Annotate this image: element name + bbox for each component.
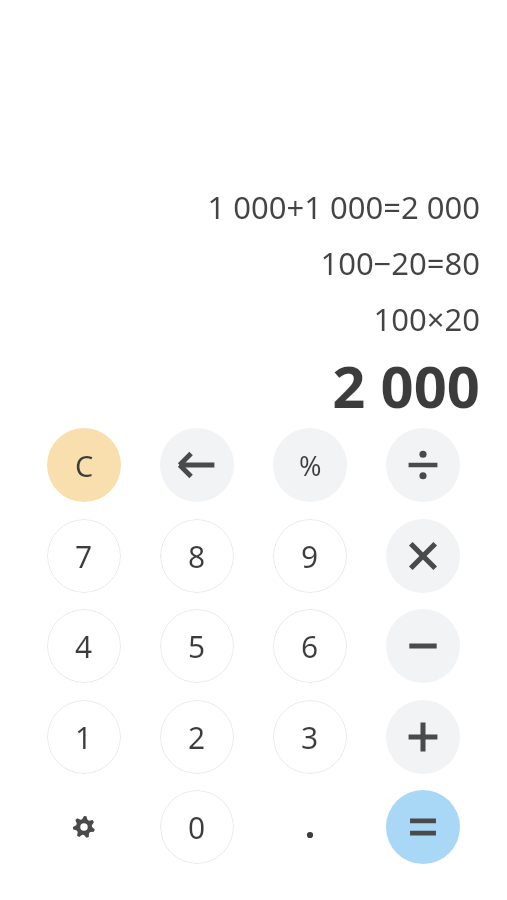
- staticText: %: [299, 447, 322, 484]
- staticText: 100×20: [0, 298, 480, 340]
- button[interactable]: 2: [160, 700, 234, 774]
- button[interactable]: Add: [386, 700, 460, 774]
- button[interactable]: Divide: [386, 428, 460, 502]
- button[interactable]: Equals: [386, 790, 460, 864]
- staticText: 9: [301, 536, 319, 577]
- staticText: 8: [188, 536, 206, 577]
- staticText: 5: [188, 626, 206, 667]
- button[interactable]: %: [273, 428, 347, 502]
- button[interactable]: 8: [160, 519, 234, 593]
- button[interactable]: 1: [47, 700, 121, 774]
- button[interactable]: 3: [273, 700, 347, 774]
- button[interactable]: Multiply: [386, 519, 460, 593]
- staticText: 1 000+1 000=2 000: [0, 186, 480, 228]
- staticText: 3: [301, 717, 319, 758]
- staticText: 0: [188, 807, 206, 848]
- staticText: C: [75, 446, 94, 485]
- button[interactable]: 9: [273, 519, 347, 593]
- staticText: 6: [301, 626, 319, 667]
- button[interactable]: 4: [47, 609, 121, 683]
- staticText: 2 000: [0, 346, 480, 425]
- staticText: 7: [75, 536, 93, 577]
- button[interactable]: Subtract: [386, 609, 460, 683]
- staticText: 1: [75, 717, 93, 758]
- button[interactable]: Backspace: [160, 428, 234, 502]
- button[interactable]: 0: [160, 790, 234, 864]
- button[interactable]: Settings: [47, 790, 121, 864]
- staticText: 2: [188, 717, 206, 758]
- staticText: 4: [75, 626, 93, 667]
- button[interactable]: 5: [160, 609, 234, 683]
- button[interactable]: C: [47, 428, 121, 502]
- button[interactable]: 7: [47, 519, 121, 593]
- staticText: 100−20=80: [0, 242, 480, 284]
- button[interactable]: 6: [273, 609, 347, 683]
- button[interactable]: Decimal point: [273, 790, 347, 864]
